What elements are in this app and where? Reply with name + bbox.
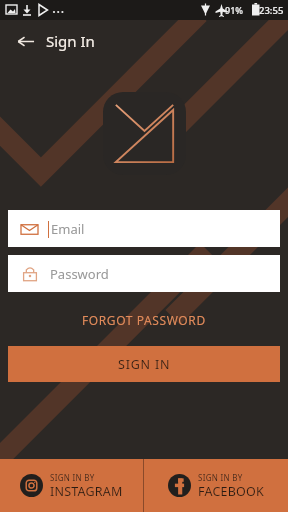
staticText: Sign In — [46, 31, 95, 51]
staticText: 23:55 — [259, 4, 284, 17]
staticText: SIGN IN BY — [198, 472, 243, 483]
staticText: SIGN IN BY — [50, 472, 95, 483]
staticText: SIGN IN — [118, 356, 171, 373]
button[interactable]: SIGN IN BY — [0, 459, 143, 512]
staticText: INSTAGRAM — [50, 483, 123, 500]
staticText: 91% — [225, 4, 243, 16]
button[interactable]: Email — [8, 210, 280, 247]
button[interactable]: SIGN IN BY — [144, 459, 288, 512]
button[interactable]: SIGN IN — [8, 346, 280, 382]
staticText: Password — [50, 265, 109, 283]
button[interactable]: Back — [8, 24, 42, 58]
button[interactable]: Password — [8, 255, 280, 292]
button[interactable]: FORGOT PASSWORD — [68, 308, 220, 332]
staticText: FACEBOOK — [198, 483, 264, 500]
staticText: FORGOT PASSWORD — [82, 312, 206, 328]
staticText: Email — [51, 220, 85, 238]
